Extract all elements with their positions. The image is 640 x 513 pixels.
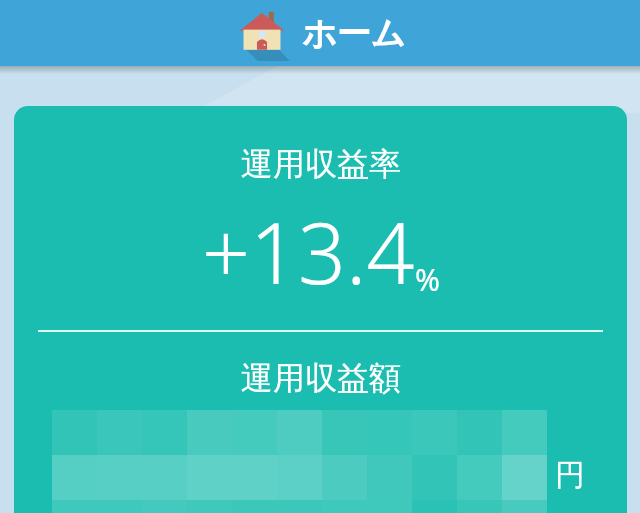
staticText: 運用収益率: [241, 144, 401, 184]
staticText: 円: [555, 456, 585, 494]
staticText: 運用収益額: [241, 358, 401, 398]
staticText: %: [415, 259, 440, 300]
button[interactable]: 運用収益率: [14, 106, 627, 513]
staticText: +13.4: [202, 194, 415, 308]
staticText: ホーム: [302, 12, 406, 55]
button[interactable]: Home: [234, 5, 290, 61]
